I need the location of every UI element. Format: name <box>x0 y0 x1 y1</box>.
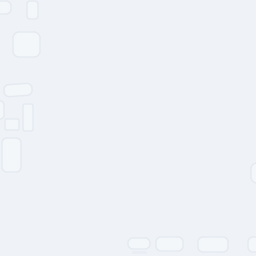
button[interactable]: Card <box>2 138 21 172</box>
button[interactable]: More <box>251 163 256 183</box>
button[interactable]: Tool one <box>128 238 150 249</box>
button[interactable]: Menu <box>27 1 38 19</box>
button[interactable]: Tool three <box>198 237 228 252</box>
button[interactable]: Back <box>0 1 11 14</box>
button[interactable]: Tag <box>4 84 32 96</box>
button[interactable]: Profile photo <box>13 32 40 57</box>
button[interactable]: Badge <box>5 119 19 130</box>
button[interactable]: Chart bar <box>23 104 33 131</box>
button[interactable]: Tool four <box>248 237 256 252</box>
button[interactable]: Icon <box>0 101 4 119</box>
button[interactable]: Tool two <box>156 237 183 251</box>
